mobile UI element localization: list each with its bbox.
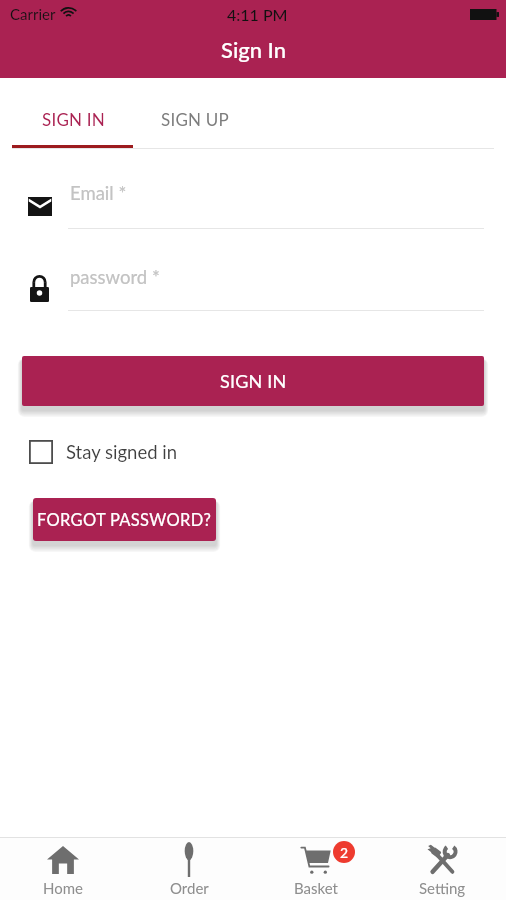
staticText: SIGN IN <box>42 109 105 129</box>
button[interactable]: FORGOT PASSWORD? <box>33 498 216 541</box>
button[interactable]: Order <box>126 838 252 900</box>
staticText: Carrier <box>10 5 56 23</box>
staticText: 4:11 PM <box>227 5 288 24</box>
staticText: FORGOT PASSWORD? <box>37 510 212 530</box>
button[interactable]: SIGN UP <box>134 78 256 149</box>
staticText: Stay signed in <box>66 441 178 463</box>
staticText: password * <box>70 266 160 288</box>
staticText: 2 <box>340 844 349 861</box>
button[interactable]: Setting <box>379 838 506 900</box>
staticText: Basket <box>294 879 338 897</box>
button[interactable]: Stay signed in <box>29 440 178 464</box>
staticText: SIGN UP <box>161 109 229 129</box>
button[interactable]: Basket <box>252 838 379 900</box>
other: Order <box>183 842 195 877</box>
staticText: Order <box>170 879 209 897</box>
staticText: SIGN IN <box>220 370 287 392</box>
button[interactable]: SIGN IN <box>13 78 134 149</box>
button[interactable]: Home <box>0 838 126 900</box>
staticText: Email * <box>70 182 127 204</box>
staticText: Sign In <box>221 36 286 62</box>
staticText: Setting <box>419 879 466 897</box>
other: Setting <box>426 843 459 873</box>
staticText: Home <box>43 879 83 897</box>
other: Home <box>47 845 79 875</box>
other: Basket <box>301 844 331 874</box>
button[interactable]: SIGN IN <box>22 356 484 406</box>
